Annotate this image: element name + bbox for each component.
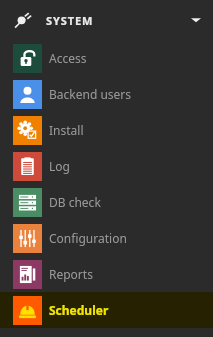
staticText: Log — [49, 158, 70, 174]
staticText: Reports — [49, 266, 93, 282]
button[interactable]: Backend users — [0, 76, 213, 112]
button[interactable]: Scheduler — [0, 292, 213, 328]
button[interactable]: Access — [0, 40, 213, 76]
staticText: DB check — [49, 194, 101, 210]
staticText: Backend users — [49, 86, 132, 102]
staticText: SYSTEM — [46, 13, 94, 28]
button[interactable]: DB check — [0, 184, 213, 220]
staticText: Install — [49, 122, 84, 138]
button[interactable]: SYSTEM — [0, 0, 213, 40]
button[interactable]: Install — [0, 112, 213, 148]
button[interactable]: Reports — [0, 256, 213, 292]
staticText: Configuration — [49, 230, 127, 246]
staticText: Scheduler — [49, 302, 109, 318]
button[interactable]: Log — [0, 148, 213, 184]
button[interactable]: Configuration — [0, 220, 213, 256]
staticText: Access — [49, 50, 87, 66]
